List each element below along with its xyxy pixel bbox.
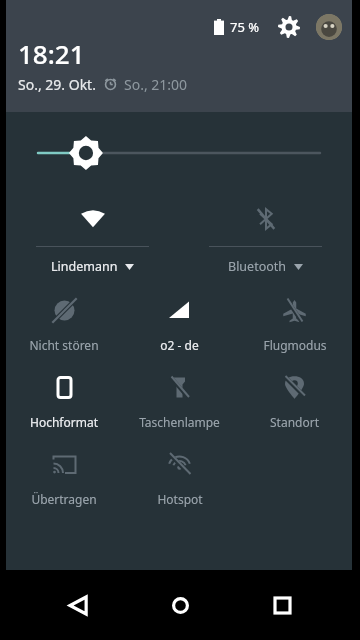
button[interactable]: Back: [54, 581, 102, 629]
staticText: Nicht stören: [29, 337, 99, 353]
staticText: So., 29. Okt.: [18, 75, 96, 94]
staticText: Flugmodus: [263, 337, 327, 353]
staticText: Lindemann: [51, 258, 118, 275]
staticText: Hotspot: [157, 491, 203, 507]
button[interactable]: Hochformat: [6, 375, 122, 430]
staticText: Taschenlampe: [139, 414, 220, 430]
button[interactable]: Nicht stören: [6, 298, 122, 353]
button[interactable]: Taschenlampe: [122, 375, 237, 430]
button[interactable]: Lindemann: [6, 194, 179, 275]
button[interactable]: Standort: [237, 375, 352, 430]
staticText: Standort: [270, 414, 319, 430]
button[interactable]: Übertragen: [6, 452, 122, 507]
button[interactable]: Settings: [276, 14, 302, 40]
button[interactable]: Recents: [258, 581, 306, 629]
button[interactable]: Bluetooth: [179, 194, 352, 275]
button[interactable]: Flugmodus: [237, 298, 352, 353]
button[interactable]: Hotspot: [122, 452, 237, 507]
button[interactable]: o2 - de: [122, 298, 237, 353]
staticText: Übertragen: [31, 491, 97, 507]
staticText: So., 21:00: [124, 75, 188, 94]
button[interactable]: Home: [156, 581, 204, 629]
staticText: Bluetooth: [228, 258, 287, 275]
staticText: Hochformat: [30, 414, 98, 430]
button[interactable]: Brightness: [6, 112, 352, 194]
staticText: 18:21: [18, 36, 85, 71]
staticText: o2 - de: [160, 337, 199, 353]
staticText: 75 %: [230, 18, 260, 36]
button[interactable]: User profile: [316, 14, 342, 40]
